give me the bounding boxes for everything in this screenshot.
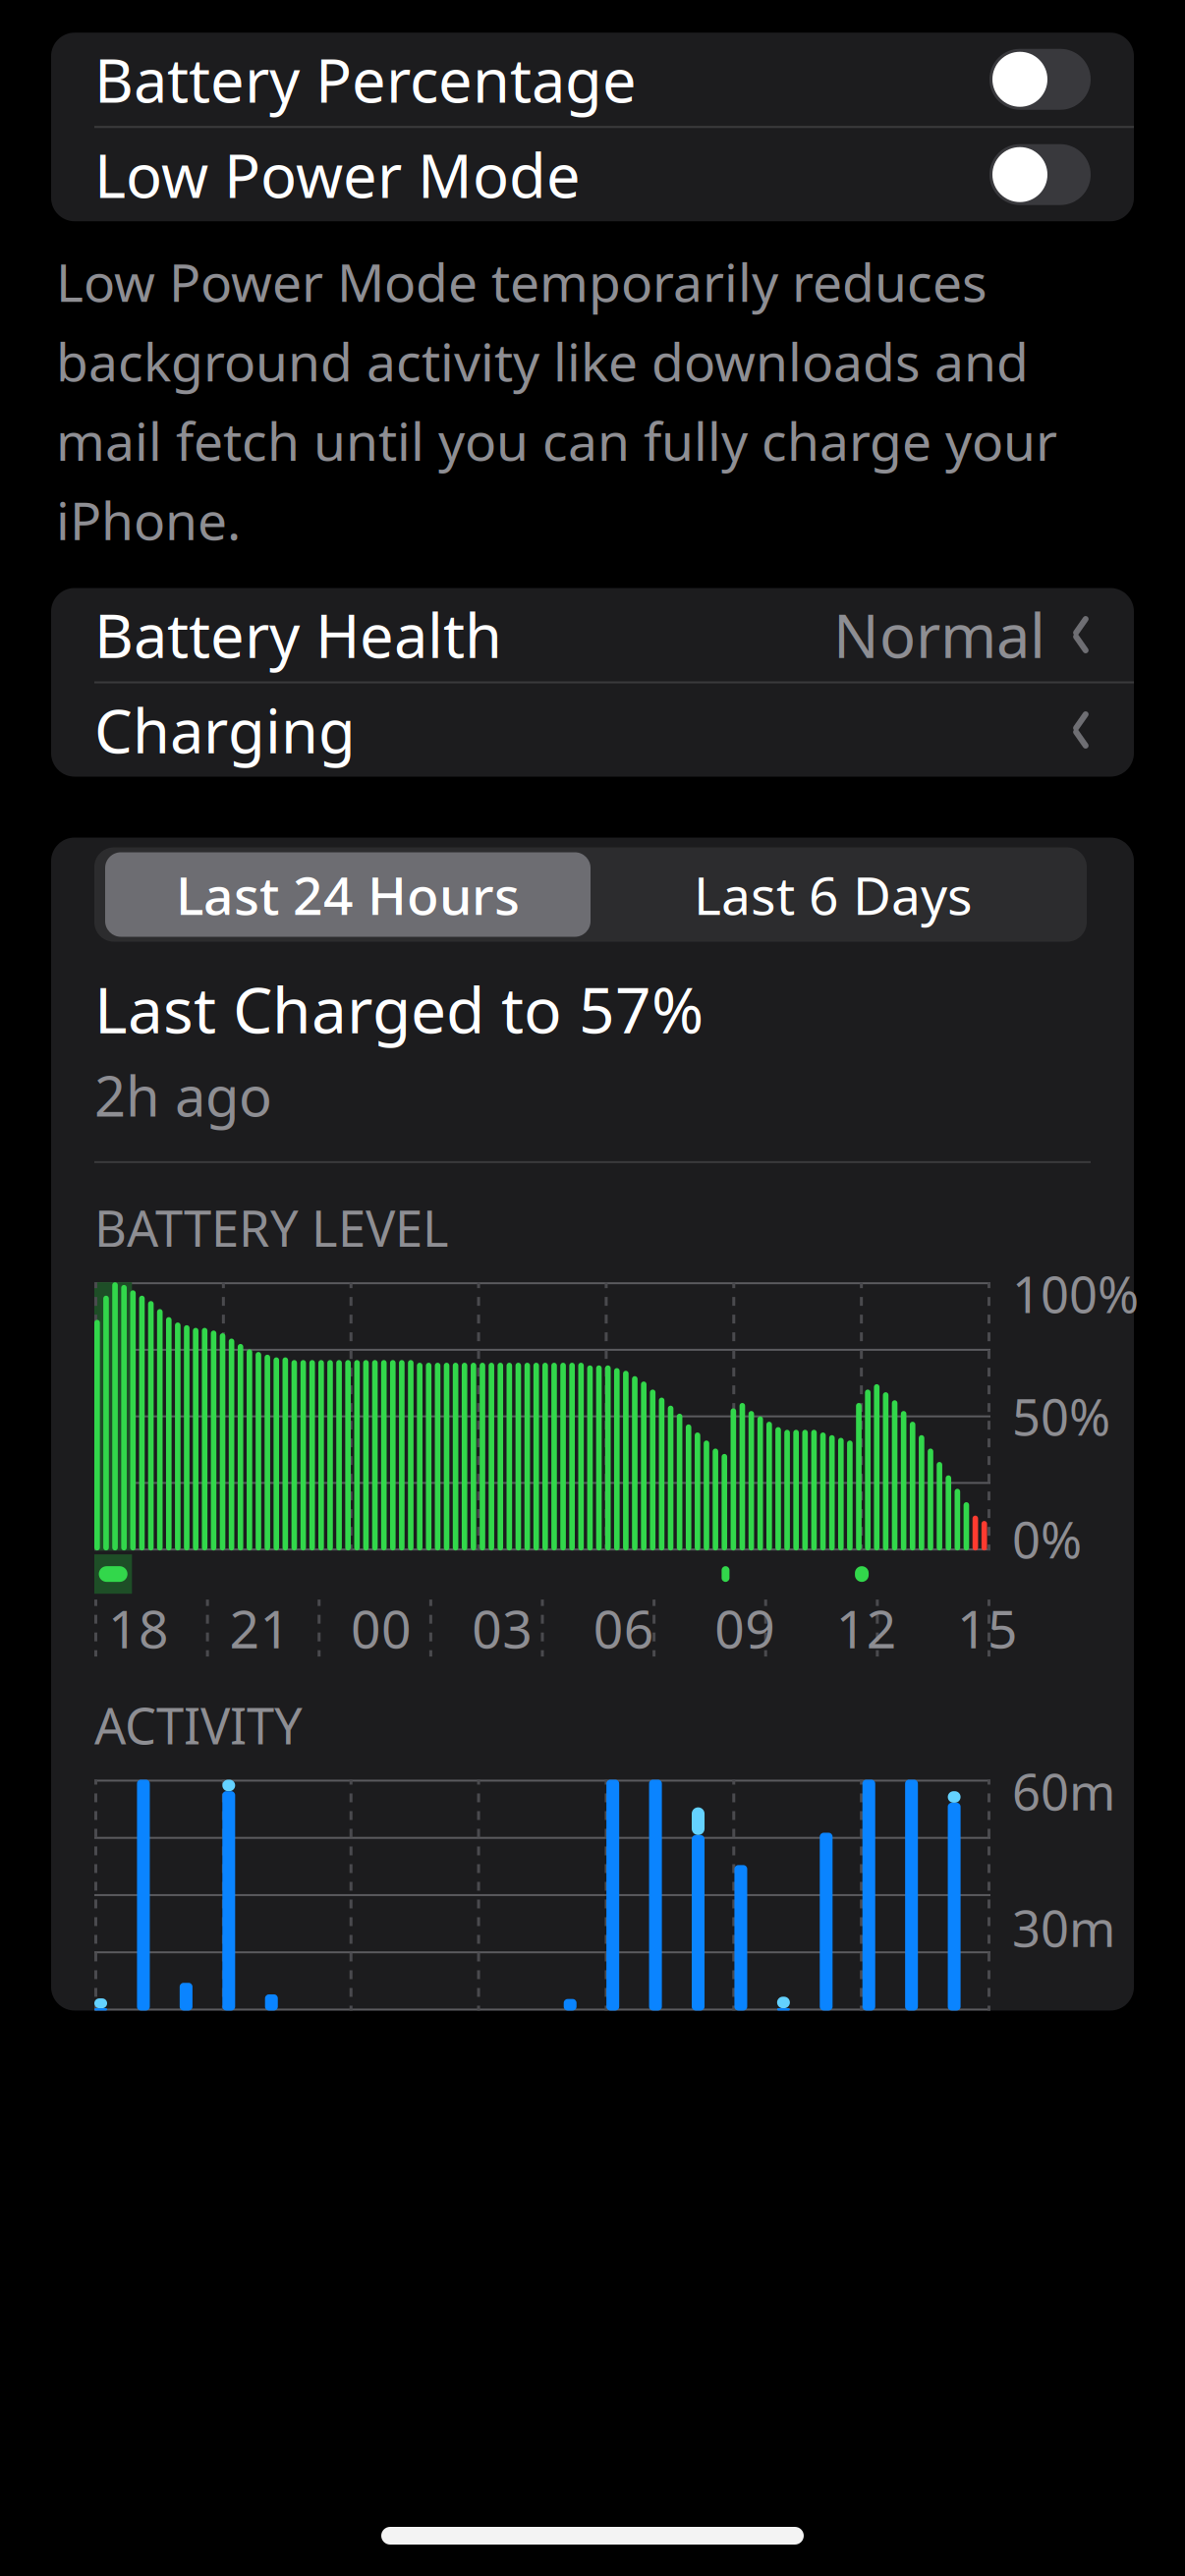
staticText: 60m xyxy=(1012,1758,1115,1824)
staticText: Low Power Mode temporarily reduces backg… xyxy=(56,247,1057,555)
staticText: 03 xyxy=(472,1593,533,1663)
staticText: Last 6 Days xyxy=(694,860,973,929)
staticText: 0% xyxy=(1012,1506,1082,1572)
staticText: 00 xyxy=(351,1593,412,1663)
staticText: 15 xyxy=(957,1593,1018,1663)
staticText: 30m xyxy=(1012,1895,1115,1961)
staticText: 21 xyxy=(229,1593,290,1663)
button[interactable]: Low Power Mode xyxy=(51,128,1134,221)
button[interactable]: Last 6 Days xyxy=(591,852,1076,937)
staticText: Normal xyxy=(833,595,1045,675)
button[interactable]: Battery Percentage xyxy=(51,33,1134,126)
staticText: Last Charged to 57% xyxy=(94,967,704,1051)
staticText: Battery Health xyxy=(94,595,502,675)
staticText: ACTIVITY xyxy=(94,1692,303,1758)
button[interactable]: Last 24 Hours xyxy=(105,852,591,937)
staticText: 50% xyxy=(1012,1383,1110,1449)
staticText: Battery Percentage xyxy=(94,39,637,119)
staticText: 12 xyxy=(836,1593,897,1663)
staticText: Charging xyxy=(94,690,356,770)
staticText: 100% xyxy=(1012,1261,1139,1327)
staticText: 18 xyxy=(108,1593,169,1663)
button[interactable]: Charging xyxy=(51,683,1134,777)
staticText: 09 xyxy=(715,1593,775,1663)
staticText: Last 24 Hours xyxy=(176,860,520,929)
staticText: 2h ago xyxy=(94,1059,272,1132)
staticText: 06 xyxy=(593,1593,654,1663)
staticText: Low Power Mode xyxy=(94,135,581,215)
staticText: BATTERY LEVEL xyxy=(94,1195,449,1261)
button[interactable]: Battery Health xyxy=(51,588,1134,681)
